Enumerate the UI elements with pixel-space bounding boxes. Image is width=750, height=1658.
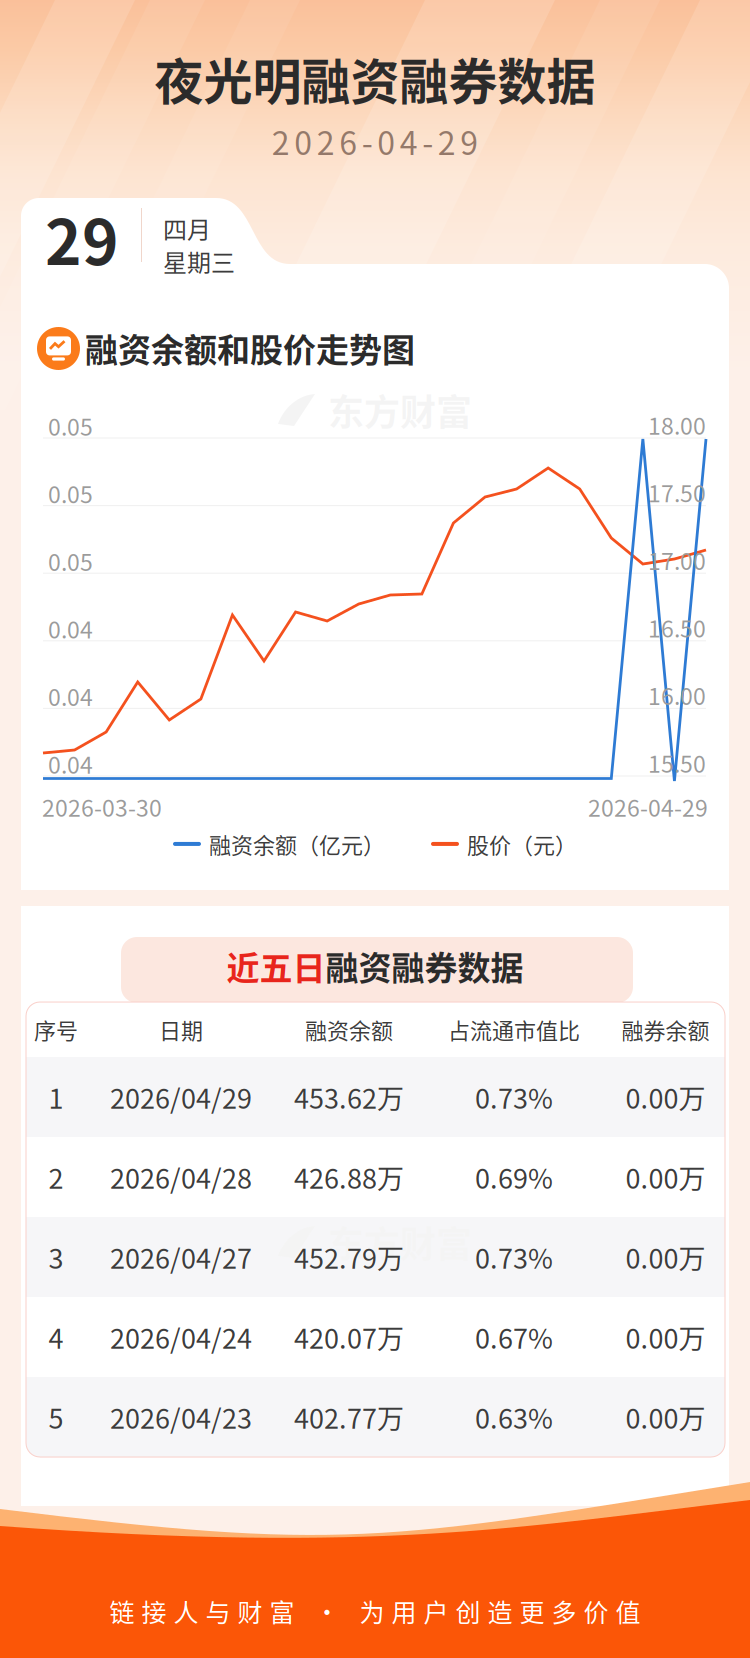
button[interactable]: 融资余额（亿元） — [173, 828, 385, 860]
staticText: 402.77万 — [294, 1397, 404, 1437]
staticText: 0.00万 — [625, 1077, 705, 1117]
staticText: 18.00 — [648, 408, 706, 441]
staticText: 近五日 — [226, 942, 325, 990]
staticText: 4 — [48, 1317, 63, 1357]
staticText: 星期三 — [163, 244, 235, 279]
staticText: 0.04 — [48, 747, 93, 780]
staticText: 2026/04/28 — [110, 1157, 252, 1197]
staticText: 5 — [48, 1397, 63, 1437]
staticText: 0.63% — [475, 1397, 553, 1437]
staticText: 426.88万 — [294, 1157, 404, 1197]
staticText: 0.05 — [48, 477, 93, 510]
button[interactable]: 1 — [26, 1057, 725, 1137]
staticText: 2026/04/24 — [110, 1317, 252, 1357]
staticText: 1 — [48, 1077, 63, 1117]
staticText: 融券余额 — [621, 1014, 709, 1045]
staticText: 日期 — [159, 1014, 203, 1045]
staticText: 17.00 — [648, 543, 706, 576]
staticText: 3 — [48, 1237, 63, 1277]
button[interactable]: 4 — [26, 1297, 725, 1377]
staticText: 0.73% — [475, 1077, 553, 1117]
staticText: 0.69% — [475, 1157, 553, 1197]
staticText: 2026-04-29 — [272, 118, 478, 164]
staticText: 16.00 — [648, 678, 706, 712]
staticText: 453.62万 — [294, 1077, 404, 1117]
staticText: 夜光明融资融券数据 — [154, 43, 595, 114]
staticText: 0.00万 — [625, 1237, 705, 1277]
staticText: 股价（元） — [467, 828, 577, 860]
staticText: 0.00万 — [625, 1157, 705, 1197]
staticText: 2026-03-30 — [42, 790, 162, 823]
staticText: 2 — [48, 1157, 63, 1197]
staticText: 序号 — [34, 1014, 78, 1045]
staticText: 0.04 — [48, 679, 93, 713]
staticText: 2026-04-29 — [588, 790, 708, 823]
staticText: 0.05 — [48, 544, 93, 577]
staticText: 2026/04/29 — [110, 1077, 252, 1117]
staticText: 420.07万 — [294, 1317, 404, 1357]
staticText: 占流通市值比 — [448, 1014, 580, 1045]
staticText: 东方财富 — [328, 1216, 472, 1268]
button[interactable]: 3 — [26, 1217, 725, 1297]
staticText: 16.50 — [648, 611, 706, 644]
staticText: 452.79万 — [294, 1237, 404, 1277]
staticText: 0.00万 — [625, 1397, 705, 1437]
staticText: 融资余额（亿元） — [209, 828, 385, 860]
staticText: 2026/04/23 — [110, 1397, 252, 1437]
staticText: 融资融券数据 — [325, 942, 523, 990]
staticText: 链接人与财富 · 为用户创造更多价值 — [109, 1593, 640, 1629]
button[interactable]: 5 — [26, 1377, 725, 1457]
staticText: 15.50 — [648, 746, 706, 779]
staticText: 东方财富 — [328, 384, 472, 436]
staticText: 0.04 — [48, 612, 93, 645]
staticText: 0.00万 — [625, 1317, 705, 1357]
staticText: 0.73% — [475, 1237, 553, 1277]
staticText: 29 — [45, 193, 119, 283]
staticText: 17.50 — [648, 476, 706, 509]
button[interactable]: 2 — [26, 1137, 725, 1217]
staticText: 0.67% — [475, 1317, 553, 1357]
staticText: 2026/04/27 — [110, 1237, 252, 1277]
button[interactable]: 股价（元） — [431, 828, 577, 860]
staticText: 融资余额 — [305, 1014, 393, 1045]
staticText: 0.05 — [48, 409, 93, 442]
staticText: 四月 — [163, 211, 211, 246]
staticText: 融资余额和股价走势图 — [85, 324, 415, 372]
